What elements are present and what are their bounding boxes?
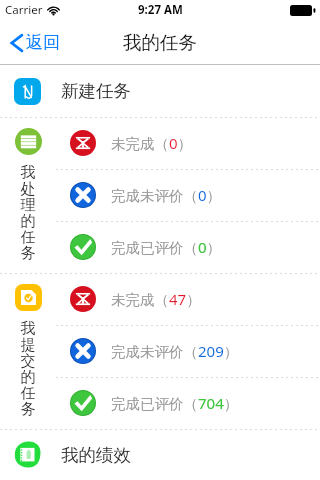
other: Done and rated	[70, 390, 96, 416]
staticText: 我的绩效	[61, 444, 131, 466]
button[interactable]: 新建任务	[0, 65, 320, 117]
other: Done, not rated	[70, 338, 96, 364]
staticText: 我处理的任务	[20, 163, 36, 263]
staticText: 未完成（0）	[111, 133, 193, 153]
staticText: 新建任务	[61, 80, 131, 102]
staticText: 完成已评价（0）	[111, 237, 222, 257]
button[interactable]: Pending	[56, 273, 320, 325]
staticText: 完成未评价（209）	[111, 341, 239, 361]
other: Done and rated	[70, 234, 96, 260]
staticText: 我的任务	[123, 31, 197, 54]
button[interactable]: Done, not rated	[56, 169, 320, 221]
button[interactable]: 我提交的任务	[0, 273, 56, 429]
button[interactable]: Pending	[56, 117, 320, 169]
button[interactable]: Done and rated	[56, 221, 320, 273]
button[interactable]: Done and rated	[56, 377, 320, 429]
button[interactable]: 返回	[0, 20, 70, 65]
button[interactable]: Done, not rated	[56, 325, 320, 377]
other: Pending	[70, 286, 96, 312]
staticText: 完成未评价（0）	[111, 185, 222, 205]
other: Pending	[70, 130, 96, 156]
staticText: 未完成（47）	[111, 289, 201, 309]
other: Done, not rated	[70, 182, 96, 208]
staticText: 完成已评价（704）	[111, 393, 239, 413]
staticText: 我提交的任务	[20, 319, 36, 419]
staticText: Carrier	[5, 2, 43, 18]
staticText: 返回	[26, 32, 60, 53]
button[interactable]: 我的绩效	[0, 429, 320, 480]
button[interactable]: 我处理的任务	[0, 117, 56, 273]
staticText: 9:27 AM	[138, 2, 183, 18]
